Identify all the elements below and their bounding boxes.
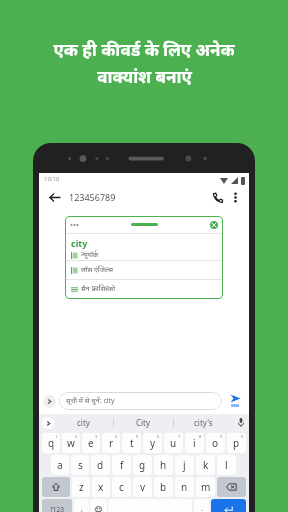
staticText: 4 bbox=[115, 434, 118, 439]
button[interactable]: Key bbox=[217, 477, 246, 497]
staticText: city bbox=[71, 237, 88, 249]
staticText: b bbox=[160, 480, 167, 494]
button[interactable]: y bbox=[143, 433, 162, 453]
button[interactable]: More suggestions bbox=[42, 417, 54, 429]
button[interactable]: न्यूयॉर्क bbox=[71, 250, 223, 260]
button[interactable]: Send SMS bbox=[226, 394, 245, 408]
button[interactable]: n bbox=[175, 477, 194, 497]
staticText: q bbox=[48, 436, 55, 450]
button[interactable]: d bbox=[91, 455, 110, 475]
button[interactable]: city's bbox=[174, 414, 233, 431]
button[interactable]: a bbox=[51, 455, 69, 475]
button[interactable]: Expand bbox=[43, 395, 56, 408]
staticText: h bbox=[160, 458, 167, 472]
button[interactable]: v bbox=[133, 477, 152, 497]
staticText: i bbox=[193, 436, 196, 450]
button[interactable]: r bbox=[102, 433, 120, 453]
staticText: k bbox=[203, 458, 209, 472]
button[interactable]: x bbox=[92, 477, 110, 497]
button[interactable]: j bbox=[175, 455, 194, 475]
staticText: g bbox=[139, 458, 146, 472]
button[interactable]: k bbox=[196, 455, 215, 475]
staticText: 5 bbox=[136, 434, 139, 439]
button[interactable]: Enter bbox=[211, 499, 246, 512]
staticText: m bbox=[201, 480, 211, 494]
button[interactable]: सूची में से चुनें: city bbox=[59, 392, 222, 410]
staticText: न्यूयॉर्क bbox=[81, 250, 99, 260]
button[interactable]: Back bbox=[46, 189, 62, 205]
staticText: , bbox=[81, 504, 83, 512]
staticText: SMS bbox=[231, 403, 240, 408]
button[interactable]: सैन फ्रांसिस्को bbox=[71, 284, 223, 294]
button[interactable]: q bbox=[42, 433, 60, 453]
staticText: c bbox=[119, 480, 124, 494]
staticText: सूची में से चुनें: city bbox=[66, 396, 115, 406]
staticText: x bbox=[98, 480, 104, 494]
button[interactable]: c bbox=[112, 477, 131, 497]
staticText: u bbox=[170, 436, 177, 450]
staticText: 6 bbox=[157, 434, 160, 439]
staticText: 9 bbox=[220, 434, 223, 439]
staticText: City bbox=[136, 417, 151, 428]
button[interactable]: z bbox=[72, 477, 90, 497]
staticText: z bbox=[79, 480, 84, 494]
staticText: s bbox=[78, 458, 83, 472]
staticText: 7 bbox=[178, 434, 181, 439]
staticText: 10:10 bbox=[44, 175, 60, 183]
button[interactable]: Close bbox=[210, 221, 218, 229]
staticText: n bbox=[181, 480, 188, 494]
staticText: 3 bbox=[95, 434, 98, 439]
button[interactable]: More options bbox=[228, 190, 242, 204]
button[interactable]: p bbox=[227, 433, 246, 453]
button[interactable]: , bbox=[74, 499, 89, 512]
button[interactable]: h bbox=[154, 455, 173, 475]
staticText: e bbox=[88, 436, 94, 450]
button[interactable]: City bbox=[114, 414, 173, 431]
staticText: 8 bbox=[199, 434, 202, 439]
staticText: j bbox=[183, 458, 186, 472]
button[interactable]: b bbox=[154, 477, 173, 497]
staticText: d bbox=[97, 458, 104, 472]
staticText: w bbox=[67, 436, 75, 450]
staticText: p bbox=[233, 436, 240, 450]
button[interactable]: city bbox=[54, 414, 113, 431]
staticText: y bbox=[150, 436, 156, 450]
button[interactable]: w bbox=[62, 433, 80, 453]
button[interactable]: e bbox=[82, 433, 100, 453]
button[interactable]: m bbox=[196, 477, 215, 497]
staticText: 1 bbox=[55, 434, 58, 439]
button[interactable]: o bbox=[206, 433, 225, 453]
button[interactable]: f bbox=[112, 455, 131, 475]
staticText: o bbox=[212, 436, 219, 450]
staticText: t bbox=[130, 436, 134, 450]
staticText: f bbox=[120, 458, 124, 472]
button[interactable]: लॉस एंजिल्स bbox=[71, 265, 223, 275]
staticText: लॉस एंजिल्स bbox=[81, 265, 113, 275]
staticText: city bbox=[77, 417, 90, 428]
button[interactable]: . bbox=[194, 499, 209, 512]
staticText: city's bbox=[194, 417, 213, 428]
button[interactable]: s bbox=[71, 455, 89, 475]
staticText: ?123 bbox=[50, 505, 64, 512]
button[interactable]: Voice input bbox=[233, 414, 249, 431]
staticText: r bbox=[109, 436, 114, 450]
staticText: वाक्यांश बनाएं bbox=[97, 65, 192, 88]
button[interactable]: Emoji bbox=[90, 499, 107, 512]
button[interactable]: Key bbox=[42, 477, 70, 497]
staticText: 0 bbox=[241, 434, 244, 439]
button[interactable]: t bbox=[122, 433, 141, 453]
staticText: a bbox=[57, 458, 63, 472]
button[interactable]: g bbox=[133, 455, 152, 475]
staticText: . bbox=[201, 504, 203, 512]
button[interactable]: l bbox=[217, 455, 236, 475]
staticText: l bbox=[225, 458, 228, 472]
staticText: 123456789 bbox=[69, 191, 116, 203]
button[interactable]: i bbox=[185, 433, 204, 453]
button[interactable]: Key bbox=[42, 499, 72, 512]
button[interactable]: u bbox=[164, 433, 183, 453]
staticText: v bbox=[140, 480, 146, 494]
button[interactable]: Call bbox=[209, 189, 225, 205]
staticText: सैन फ्रांसिस्को bbox=[81, 284, 116, 294]
staticText: एक ही कीवर्ड के लिए अनेक bbox=[53, 38, 235, 61]
